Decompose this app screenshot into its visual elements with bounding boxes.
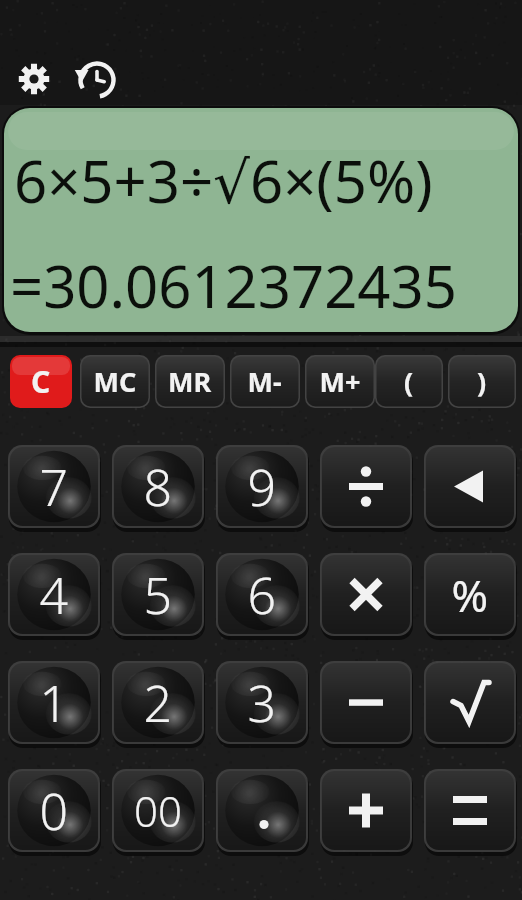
button[interactable] [8,769,100,852]
button[interactable] [216,445,308,528]
button[interactable] [424,769,516,852]
button[interactable]: Decimal point [216,769,308,852]
button[interactable] [4,108,518,332]
button[interactable] [320,661,412,744]
button[interactable]: Backspace [424,445,516,528]
button[interactable] [112,769,204,852]
button[interactable] [112,445,204,528]
button[interactable] [230,355,300,408]
button[interactable] [80,355,150,408]
button[interactable] [424,553,516,636]
button[interactable] [216,661,308,744]
button[interactable] [320,553,412,636]
button[interactable] [8,553,100,636]
button[interactable] [320,445,412,528]
button[interactable] [320,769,412,852]
button[interactable] [8,445,100,528]
button[interactable] [305,355,375,408]
button[interactable] [10,355,72,408]
button[interactable] [448,355,516,408]
button[interactable] [375,355,443,408]
button[interactable] [155,355,225,408]
button[interactable]: History [73,56,121,104]
button[interactable] [216,553,308,636]
button[interactable]: Settings [10,55,58,103]
button[interactable]: Square root [424,661,516,744]
button[interactable] [8,661,100,744]
button[interactable] [112,661,204,744]
button[interactable] [112,553,204,636]
